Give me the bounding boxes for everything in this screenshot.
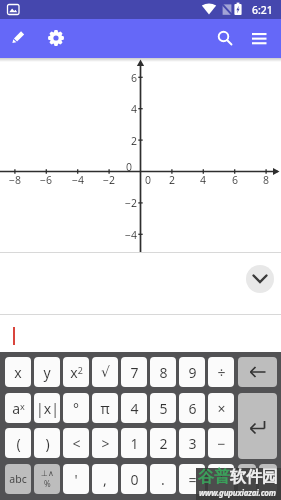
staticText: 6 <box>220 173 250 187</box>
button[interactable] <box>238 393 277 459</box>
staticText: 4 <box>188 173 218 187</box>
staticText: 6 <box>188 399 197 418</box>
button[interactable]: × <box>208 393 234 423</box>
button[interactable]: ( <box>5 428 31 458</box>
staticText: 0 <box>102 160 132 174</box>
staticText: 2 <box>159 434 168 453</box>
staticText: + <box>217 470 226 489</box>
button[interactable] <box>259 464 277 494</box>
staticText: 0 <box>130 470 139 489</box>
button[interactable]: 4 <box>121 393 147 423</box>
staticText: |x| <box>36 399 59 418</box>
button[interactable]: − <box>208 428 234 458</box>
button[interactable] <box>246 265 274 293</box>
button[interactable]: √ <box>92 357 118 387</box>
staticText: , <box>103 470 107 489</box>
button[interactable]: 5 <box>150 393 176 423</box>
staticText: − <box>217 434 226 453</box>
button[interactable]: 8 <box>150 357 176 387</box>
button[interactable]: 6 <box>179 393 205 423</box>
staticText: = <box>188 470 197 489</box>
staticText: −6 <box>31 173 61 187</box>
staticText: 9 <box>188 363 197 382</box>
staticText: abc <box>9 472 27 486</box>
staticText: . <box>161 470 165 489</box>
button[interactable]: x <box>5 357 31 387</box>
staticText: 7 <box>130 363 139 382</box>
staticText: 0 <box>133 173 163 187</box>
staticText: x <box>14 363 22 382</box>
button[interactable]: 1 <box>121 428 147 458</box>
button[interactable] <box>0 315 281 352</box>
staticText: 3 <box>188 434 197 453</box>
staticText: 8 <box>251 173 281 187</box>
button[interactable] <box>212 25 238 51</box>
button[interactable]: ⊥∧ <box>34 464 60 494</box>
staticText: −2 <box>107 196 137 210</box>
staticText: y <box>43 363 51 382</box>
button[interactable]: < <box>63 428 89 458</box>
button[interactable] <box>43 25 69 51</box>
staticText: 1 <box>130 434 139 453</box>
staticText: 6 <box>107 71 137 85</box>
staticText: > <box>101 434 110 453</box>
button[interactable]: abc <box>5 464 31 494</box>
staticText: 6:21 <box>252 3 273 17</box>
button[interactable]: ÷ <box>208 357 234 387</box>
button[interactable]: ' <box>63 464 89 494</box>
staticText: −4 <box>63 173 93 187</box>
staticText: 5 <box>159 399 168 418</box>
staticText: ax <box>12 399 25 418</box>
staticText: 8 <box>159 363 168 382</box>
staticText: 软件园 <box>230 467 278 487</box>
staticText: ) <box>45 434 50 453</box>
staticText: ° <box>73 399 79 418</box>
button[interactable] <box>5 25 30 50</box>
staticText: × <box>217 399 226 418</box>
button[interactable]: 3 <box>179 428 205 458</box>
staticText: 4 <box>107 102 137 116</box>
button[interactable]: ° <box>63 393 89 423</box>
button[interactable]: , <box>92 464 118 494</box>
staticText: 谷普 <box>198 467 230 487</box>
staticText: www.gupuxiazai.com <box>199 487 276 498</box>
staticText: √ <box>101 364 110 380</box>
button[interactable]: 9 <box>179 357 205 387</box>
staticText: x2 <box>70 363 83 382</box>
button[interactable]: > <box>92 428 118 458</box>
button[interactable]: π <box>92 393 118 423</box>
button[interactable] <box>245 25 273 53</box>
staticText: < <box>72 434 81 453</box>
staticText: 2 <box>157 173 187 187</box>
button[interactable]: |x| <box>34 393 60 423</box>
button[interactable]: + <box>208 464 234 494</box>
button[interactable]: x2 <box>63 357 89 387</box>
button[interactable] <box>238 464 256 494</box>
button[interactable]: . <box>150 464 176 494</box>
button[interactable]: 7 <box>121 357 147 387</box>
staticText: 4 <box>130 399 139 418</box>
staticText: −8 <box>0 173 30 187</box>
staticText: π <box>100 399 110 418</box>
button[interactable]: = <box>179 464 205 494</box>
button[interactable]: 0 <box>121 464 147 494</box>
button[interactable]: ax <box>5 393 31 423</box>
staticText: −4 <box>107 228 137 242</box>
staticText: 2 <box>107 134 137 148</box>
staticText: % <box>44 478 51 489</box>
staticText: ' <box>74 470 78 489</box>
staticText: ( <box>16 434 21 453</box>
staticText: ÷ <box>217 363 226 382</box>
button[interactable]: 2 <box>150 428 176 458</box>
staticText: ⊥∧ <box>41 469 54 478</box>
button[interactable] <box>238 357 277 387</box>
button[interactable]: y <box>34 357 60 387</box>
staticText: −2 <box>94 173 124 187</box>
button[interactable]: ) <box>34 428 60 458</box>
